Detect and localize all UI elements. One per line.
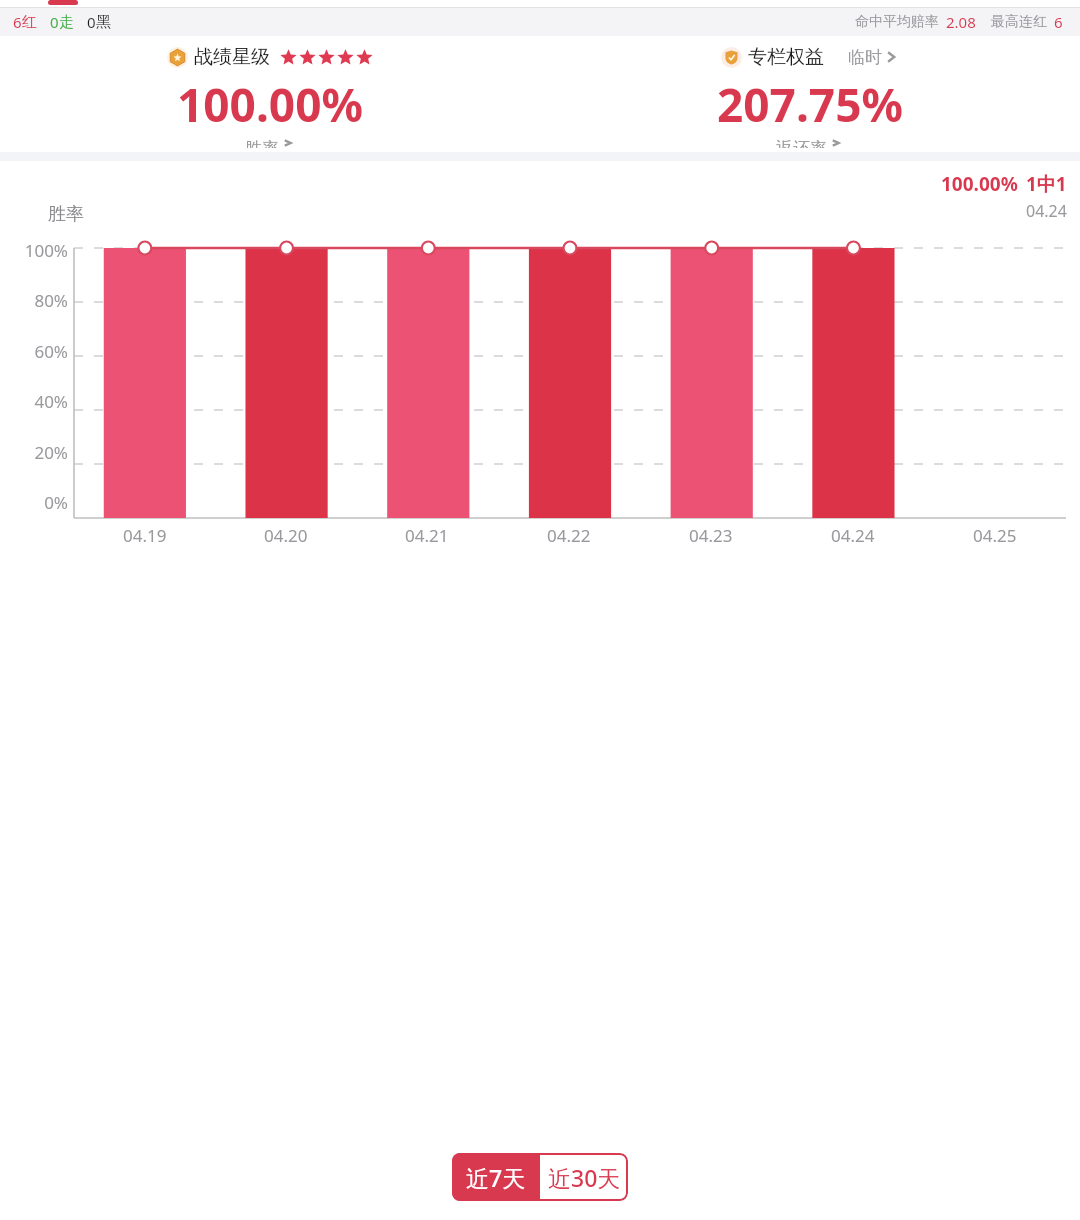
staticText: 0% <box>10 491 68 509</box>
staticText: 胜率 <box>245 138 279 148</box>
staticText: 100.00% <box>941 171 1018 197</box>
staticText: 2.08 <box>946 12 976 32</box>
staticText: 1中1 <box>1026 171 1067 197</box>
staticText: 04.24 <box>1026 200 1067 222</box>
button[interactable]: 战绩星级 <box>167 45 373 69</box>
staticText: 04.21 <box>405 524 449 547</box>
staticText: 80% <box>10 289 68 307</box>
staticText: 0 <box>50 12 59 32</box>
staticText: 命中平均赔率 <box>855 13 939 31</box>
staticText: 临时 <box>848 47 882 68</box>
button[interactable]: 专栏权益 <box>721 45 900 69</box>
staticText: 近7天 <box>466 1162 526 1193</box>
staticText: 黑 <box>96 13 111 32</box>
staticText: 返还率 <box>776 138 827 148</box>
button[interactable]: 近30天 <box>540 1153 628 1201</box>
staticText: 207.75% <box>717 73 903 136</box>
staticText: 04.25 <box>973 524 1017 547</box>
staticText: 20% <box>10 441 68 459</box>
staticText: 6 <box>1054 12 1063 32</box>
staticText: 6 <box>13 12 22 32</box>
staticText: 04.20 <box>264 524 308 547</box>
staticText: 走 <box>59 13 74 32</box>
staticText: 近30天 <box>548 1162 621 1193</box>
staticText: 专栏权益 <box>748 45 824 69</box>
staticText: 战绩星级 <box>194 45 270 69</box>
staticText: 60% <box>10 340 68 358</box>
staticText: 红 <box>22 13 37 32</box>
staticText: 胜率 <box>48 203 84 226</box>
button[interactable]: 返还率 <box>776 138 844 148</box>
staticText: 40% <box>10 390 68 408</box>
button[interactable]: 近7天 <box>452 1153 540 1201</box>
staticText: 100.00% <box>177 73 363 136</box>
staticText: 04.22 <box>547 524 591 547</box>
staticText: 100% <box>10 239 68 257</box>
staticText: 0 <box>87 12 96 32</box>
button[interactable]: 胜率 <box>245 138 296 148</box>
staticText: 04.23 <box>689 524 733 547</box>
staticText: 04.19 <box>123 524 167 547</box>
staticText: 最高连红 <box>991 13 1047 31</box>
staticText: 04.24 <box>831 524 875 547</box>
